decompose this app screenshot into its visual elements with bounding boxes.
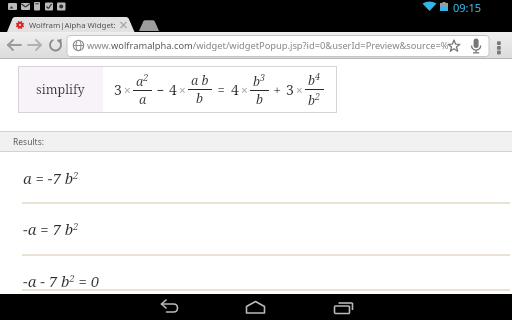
staticText: 09:15 xyxy=(453,0,482,15)
button[interactable] xyxy=(341,294,512,320)
button[interactable] xyxy=(170,294,341,320)
staticText: Results: xyxy=(13,136,45,148)
button[interactable]: simplify xyxy=(18,66,337,113)
staticText: b xyxy=(256,91,264,108)
staticText: 4 xyxy=(169,80,177,99)
staticText: − xyxy=(153,81,168,99)
staticText: 3 xyxy=(114,80,122,99)
staticText: a b xyxy=(191,72,209,89)
staticText: × xyxy=(124,82,131,98)
staticText: simplify xyxy=(36,81,85,98)
button[interactable] xyxy=(0,294,170,320)
staticText: a2 xyxy=(136,71,149,90)
button[interactable]: a = −7 b2 xyxy=(23,168,79,188)
button[interactable]: −a = 7 b2 xyxy=(23,219,79,239)
button[interactable]: Wolfram|Alpha Widget: xyxy=(29,20,116,31)
staticText: b2 xyxy=(308,90,321,109)
button[interactable]: www.wolframalpha.com/widget/widgetPopup.… xyxy=(87,39,449,52)
staticText: × xyxy=(241,82,248,98)
staticText: b4 xyxy=(308,70,321,89)
staticText: × xyxy=(179,82,186,98)
staticText: b3 xyxy=(253,71,266,90)
staticText: = xyxy=(214,81,229,99)
button[interactable]: −a − 7 b2 = 0 xyxy=(23,271,100,291)
staticText: a xyxy=(139,91,147,108)
staticText: 3 xyxy=(286,80,294,99)
staticText: + xyxy=(270,81,285,99)
staticText: b xyxy=(196,90,204,107)
staticText: 4 xyxy=(231,80,239,99)
staticText: × xyxy=(296,82,303,98)
